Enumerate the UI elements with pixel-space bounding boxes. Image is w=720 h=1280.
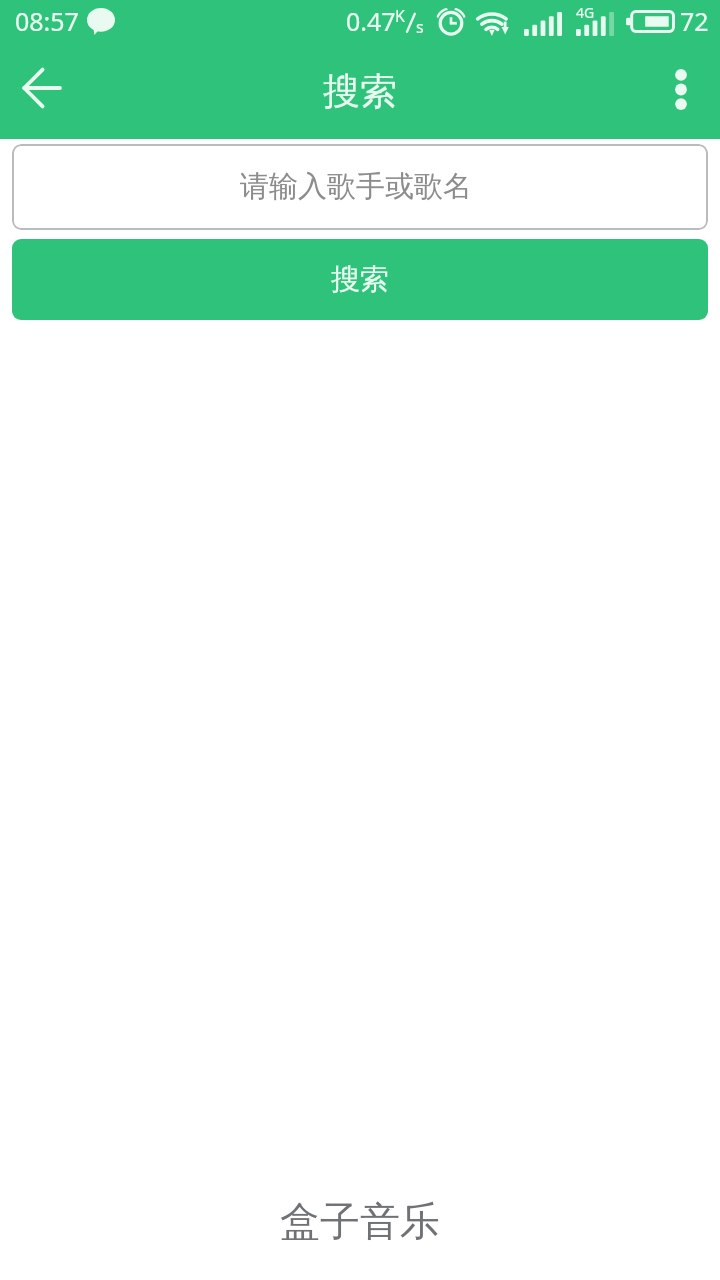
staticText: 盒子音乐 — [280, 1196, 440, 1246]
staticText: 请输入歌手或歌名 — [240, 168, 472, 205]
button[interactable]: 搜索 — [12, 239, 708, 320]
staticText: 08:57 — [15, 4, 79, 38]
staticText: K — [395, 5, 405, 27]
button[interactable]: Back — [0, 44, 84, 139]
staticText: 搜索 — [331, 261, 389, 298]
staticText: 4G — [576, 3, 595, 22]
staticText: 搜索 — [323, 68, 397, 115]
button[interactable]: More options — [644, 44, 720, 139]
staticText: 72 — [680, 4, 709, 38]
button[interactable]: 请输入歌手或歌名 — [12, 144, 708, 230]
staticText: 0.47 — [346, 4, 396, 38]
staticText: s — [416, 16, 424, 38]
